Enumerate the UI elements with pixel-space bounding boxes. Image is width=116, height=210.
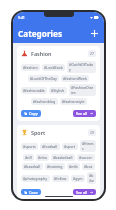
button[interactable]: #baseball bbox=[22, 163, 43, 170]
staticText: #OutfitOfToday bbox=[69, 62, 94, 72]
button[interactable]: #Stylish bbox=[49, 87, 67, 94]
staticText: #box bbox=[84, 164, 93, 169]
staticText: 27 bbox=[90, 51, 94, 56]
button[interactable]: #box bbox=[82, 163, 95, 170]
button[interactable]: Copy bbox=[21, 110, 41, 117]
staticText: #bike bbox=[89, 173, 94, 183]
button[interactable]: #nfl bbox=[23, 154, 34, 161]
staticText: #sports bbox=[23, 144, 36, 149]
staticText: #photography bbox=[23, 176, 48, 181]
staticText: #fashionWeek bbox=[63, 76, 87, 81]
button[interactable]: #fashionable bbox=[21, 87, 47, 94]
staticText: #baseball bbox=[24, 164, 41, 169]
staticText: #fashionable bbox=[23, 88, 45, 93]
staticText: 9:41 bbox=[18, 15, 25, 20]
button[interactable]: #gym bbox=[71, 175, 85, 182]
button[interactable]: #LookOfTheDay bbox=[28, 75, 59, 82]
button[interactable]: #training bbox=[45, 163, 65, 170]
staticText: #LookBook bbox=[44, 65, 63, 70]
staticText: #fitness bbox=[82, 141, 94, 151]
other: Fashion icon bbox=[21, 50, 28, 57]
button[interactable]: #nba bbox=[36, 154, 49, 161]
staticText: Sport bbox=[31, 129, 46, 136]
staticText: #nfl bbox=[25, 155, 32, 160]
button[interactable]: #follow bbox=[52, 175, 69, 182]
button[interactable]: Sport icon bbox=[17, 125, 100, 199]
button[interactable]: #bike bbox=[87, 172, 96, 184]
other: Sport icon bbox=[21, 129, 28, 136]
staticText: #Stylish bbox=[51, 88, 65, 93]
button[interactable]: #OutfitOfToday bbox=[67, 61, 96, 73]
staticText: Copy bbox=[29, 111, 38, 116]
button[interactable]: See all bbox=[73, 110, 96, 117]
staticText: #basketball bbox=[53, 155, 73, 160]
staticText: #fashionblog bbox=[33, 99, 56, 104]
button[interactable]: #fashion bbox=[21, 64, 40, 71]
staticText: #sport bbox=[64, 144, 76, 149]
button[interactable]: #football bbox=[40, 143, 60, 150]
staticText: #nba bbox=[38, 155, 47, 160]
staticText: #LookOfTheDay bbox=[30, 76, 57, 81]
staticText: Fashion bbox=[31, 50, 52, 57]
staticText: See all bbox=[76, 190, 88, 194]
button[interactable]: Add category bbox=[90, 29, 99, 38]
button[interactable]: #LookBook bbox=[42, 64, 65, 71]
staticText: Categories bbox=[18, 28, 62, 39]
staticText: #soccer bbox=[79, 155, 93, 160]
button[interactable]: #soccer bbox=[77, 154, 95, 161]
button[interactable]: #sports bbox=[21, 143, 38, 150]
button[interactable]: See all bbox=[73, 189, 96, 195]
button[interactable]: #basketball bbox=[51, 154, 75, 161]
staticText: 29 bbox=[90, 130, 94, 135]
staticText: Copy bbox=[29, 190, 38, 194]
staticText: #football bbox=[42, 144, 58, 149]
staticText: #gym bbox=[73, 176, 83, 181]
button[interactable]: #sport bbox=[62, 143, 78, 150]
button[interactable]: #mlb bbox=[67, 163, 80, 170]
staticText: #fashion bbox=[23, 65, 38, 70]
button[interactable]: Copy bbox=[21, 189, 41, 195]
button[interactable]: #fitness bbox=[80, 140, 96, 152]
staticText: See all bbox=[76, 111, 88, 116]
staticText: #follow bbox=[54, 176, 67, 181]
button[interactable]: Fashion icon bbox=[17, 46, 100, 121]
staticText: #mlb bbox=[69, 164, 78, 169]
staticText: #fashionstyle bbox=[62, 99, 85, 104]
button[interactable]: #FashionDiaries bbox=[69, 84, 96, 96]
staticText: #training bbox=[47, 164, 63, 169]
button[interactable]: #fashionstyle bbox=[60, 98, 87, 105]
button[interactable]: #fashionWeek bbox=[61, 75, 89, 82]
button[interactable]: #photography bbox=[21, 175, 50, 182]
staticText: #FashionDiaries bbox=[71, 85, 94, 95]
button[interactable]: #fashionblog bbox=[31, 98, 58, 105]
